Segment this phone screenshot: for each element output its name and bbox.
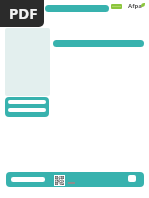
- button[interactable]: PDF: [0, 0, 44, 27]
- other: Action: [128, 175, 136, 182]
- staticText: PDF: [9, 3, 38, 23]
- other: QR code: [54, 175, 65, 186]
- staticText: Afpa: [128, 2, 142, 10]
- button[interactable]: QR code: [6, 172, 144, 187]
- button[interactable]: [111, 4, 122, 9]
- button[interactable]: [5, 97, 49, 117]
